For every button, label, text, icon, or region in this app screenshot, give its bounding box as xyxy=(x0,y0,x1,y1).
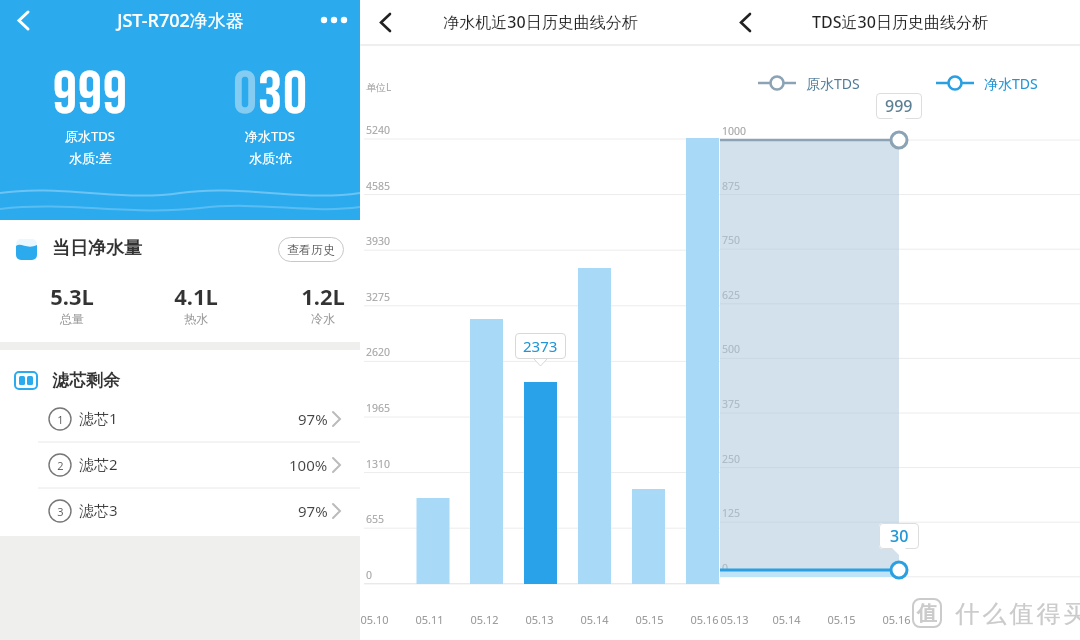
button[interactable] xyxy=(38,488,360,534)
staticText: 冷水 xyxy=(311,311,335,326)
staticText: 30 xyxy=(890,525,909,547)
staticText: 滤芯2 xyxy=(79,454,118,474)
button[interactable] xyxy=(314,4,354,40)
staticText: 3275 xyxy=(366,290,391,304)
staticText: 0 xyxy=(722,561,729,575)
staticText: 750 xyxy=(722,233,741,247)
staticText: 375 xyxy=(722,397,741,411)
staticText: 水质:差 xyxy=(69,149,112,167)
staticText: 原水TDS xyxy=(806,74,860,93)
staticText: 热水 xyxy=(184,311,208,326)
staticText: 1965 xyxy=(366,401,391,415)
staticText: 875 xyxy=(722,179,741,193)
staticText: 4.1L xyxy=(174,281,218,311)
staticText: 值 xyxy=(917,601,937,626)
staticText: 2373 xyxy=(523,336,558,356)
staticText: TDS近30日历史曲线分析 xyxy=(812,11,988,33)
staticText: 125 xyxy=(722,506,741,520)
staticText: 总量 xyxy=(60,311,84,326)
button[interactable] xyxy=(38,396,360,442)
staticText: 100% xyxy=(289,455,328,475)
staticText: 05.15 xyxy=(827,612,856,627)
staticText: 3930 xyxy=(366,234,391,248)
staticText: 05.13 xyxy=(720,612,749,627)
staticText: 05.11 xyxy=(415,612,444,627)
staticText: 滤芯剩余 xyxy=(52,370,120,391)
staticText: 05.16 xyxy=(882,612,911,627)
staticText: 97% xyxy=(298,409,328,429)
staticText: 030 xyxy=(233,59,308,121)
staticText: 05.13 xyxy=(525,612,554,627)
staticText: 当日净水量 xyxy=(52,237,142,260)
button[interactable] xyxy=(6,4,42,40)
staticText: 05.14 xyxy=(772,612,801,627)
staticText: 2620 xyxy=(366,345,391,359)
staticText: 05.16 xyxy=(690,612,719,627)
staticText: 2 xyxy=(57,458,64,473)
staticText: 655 xyxy=(366,512,385,526)
staticText: 999 xyxy=(53,59,128,121)
staticText: 1000 xyxy=(722,124,747,138)
staticText: 999 xyxy=(885,95,913,117)
staticText: 查看历史 xyxy=(287,242,335,257)
button[interactable] xyxy=(38,442,360,488)
staticText: 水质:优 xyxy=(249,149,292,167)
staticText: 0 xyxy=(366,568,373,582)
staticText: 1 xyxy=(57,412,64,427)
staticText: 净水TDS xyxy=(245,127,295,145)
staticText: 5.3L xyxy=(50,281,94,311)
staticText: 250 xyxy=(722,452,741,466)
staticText: 05.15 xyxy=(635,612,664,627)
staticText: 625 xyxy=(722,288,741,302)
staticText: 97% xyxy=(298,501,328,521)
button[interactable] xyxy=(366,4,402,40)
staticText: 5240 xyxy=(366,123,391,137)
staticText: 滤芯3 xyxy=(79,500,118,520)
staticText: 1.2L xyxy=(301,281,345,311)
staticText: 500 xyxy=(722,342,741,356)
staticText: 05.10 xyxy=(360,612,389,627)
button[interactable] xyxy=(726,4,762,40)
staticText: 4585 xyxy=(366,179,391,193)
staticText: 什么值得买 xyxy=(954,599,1080,629)
staticText: 3 xyxy=(57,504,64,519)
button[interactable]: 查看历史 xyxy=(278,237,344,262)
staticText: 05.14 xyxy=(580,612,609,627)
staticText: 净水TDS xyxy=(984,74,1038,93)
staticText: JST-R702净水器 xyxy=(117,8,244,33)
staticText: 1310 xyxy=(366,457,391,471)
staticText: 滤芯1 xyxy=(79,408,118,428)
staticText: 05.12 xyxy=(470,612,499,627)
staticText: 单位L xyxy=(366,80,392,94)
staticText: 原水TDS xyxy=(65,127,115,145)
staticText: 净水机近30日历史曲线分析 xyxy=(443,11,638,33)
